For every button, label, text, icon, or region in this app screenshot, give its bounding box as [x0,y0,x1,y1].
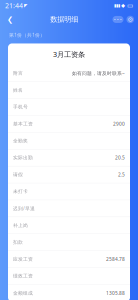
staticText: ◆ [121,2,125,8]
staticText: 基本工资 [13,121,33,127]
staticText: ⊙ [128,16,133,23]
staticText: 手机号 [13,104,28,110]
staticText: 扣款 [13,239,23,245]
staticText: ❮ [7,15,13,24]
staticText: 绩效工资 [13,273,33,279]
staticText: 21:44 [5,1,23,10]
staticText: 全勤奖 [13,138,28,144]
button[interactable]: 关闭 [126,16,134,23]
staticText: ▮▮▮ [114,3,121,8]
staticText: 实际出勤 [13,155,33,161]
button[interactable]: 更多 [112,16,123,23]
staticText: 姓名 [13,87,23,93]
staticText: 未打卡 [13,188,28,194]
staticText: 补上岗 [13,222,28,228]
staticText: 应发工资 [13,256,33,262]
staticText: ▭ [125,2,133,9]
staticText: 2.5 [118,171,125,178]
staticText: 金额组成 [13,290,33,296]
staticText: 第1份（共1份） [9,32,45,38]
staticText: 迟到/早退 [13,205,35,212]
staticText: 2584.78 [106,256,125,262]
staticText: 3月工资条 [53,49,85,59]
staticText: 附言 [13,70,23,76]
staticText: 20.5 [115,154,125,161]
staticText: 1305.88 [106,290,125,296]
staticText: • • • [114,16,122,22]
staticText: 2900 [113,121,125,127]
staticText: 如有问题，请及时联系~ [72,70,125,76]
staticText: 数据明细 [50,15,78,24]
button[interactable]: 返回 [4,12,16,26]
staticText: 请假 [13,172,23,178]
staticText: ◤ [23,3,27,8]
